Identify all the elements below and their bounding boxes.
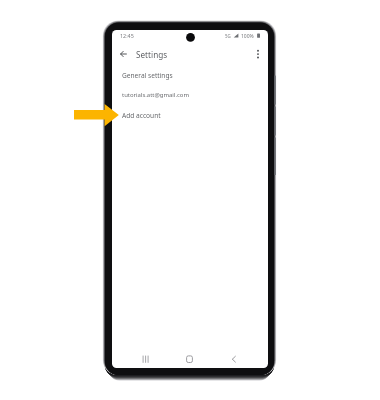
staticText: 12:45 [120, 32, 134, 39]
button[interactable]: More options [253, 49, 263, 59]
staticText: 5G [225, 33, 231, 39]
staticText: General settings [122, 71, 173, 80]
staticText: Add account [122, 111, 161, 120]
staticText: 100% [241, 33, 254, 40]
other: Callout arrow pointing to Add account [74, 104, 119, 126]
button[interactable]: Back [216, 350, 268, 367]
button[interactable]: Back [117, 44, 133, 60]
button[interactable]: Recent apps [112, 350, 164, 367]
button[interactable]: General settings [112, 65, 268, 85]
button[interactable]: Add account [112, 105, 268, 125]
button[interactable]: tutorials.att@gmail.com [112, 85, 268, 105]
button[interactable]: Home [164, 350, 216, 367]
staticText: Settings [136, 49, 168, 60]
staticText: tutorials.att@gmail.com [122, 91, 189, 99]
